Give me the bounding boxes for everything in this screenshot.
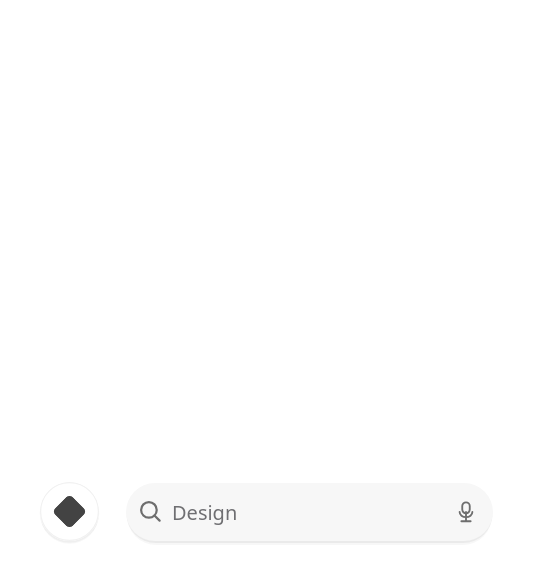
staticText: Design	[172, 499, 453, 526]
button[interactable]: Design	[126, 483, 493, 541]
button[interactable]: Google Lens	[40, 482, 99, 541]
button[interactable]: Voice search	[453, 499, 479, 525]
